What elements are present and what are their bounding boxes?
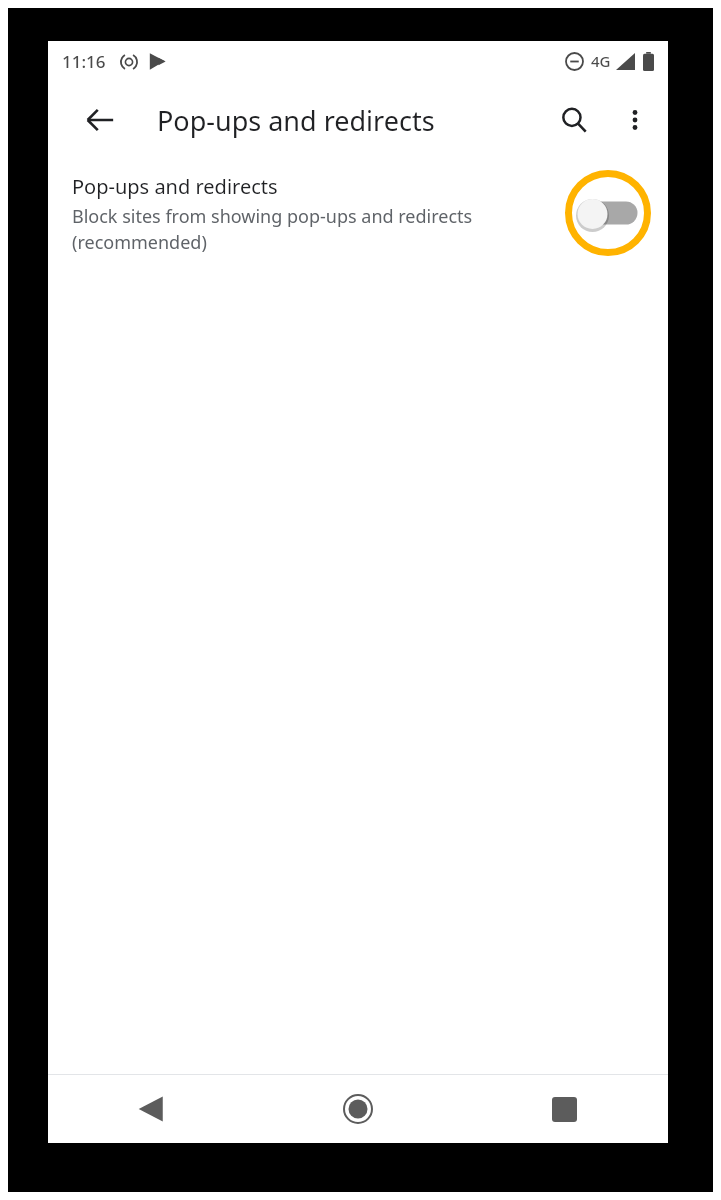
button[interactable]: Pop-ups and redirects toggle [564,169,652,257]
staticText: 4G [591,51,611,71]
button[interactable]: Navigate up [76,96,124,144]
button[interactable]: Recent apps [461,1075,668,1143]
button[interactable]: More options [611,96,659,144]
button[interactable]: Pop-ups and redirects [48,159,668,271]
button[interactable]: Home [254,1075,461,1143]
staticText: 11:16 [62,50,106,73]
button[interactable]: Back [48,1075,254,1143]
staticText: Pop-ups and redirects [72,173,278,200]
staticText: Pop-ups and redirects [157,102,435,139]
staticText: Block sites from showing pop-ups and red… [72,204,558,254]
button[interactable]: Search [550,96,598,144]
